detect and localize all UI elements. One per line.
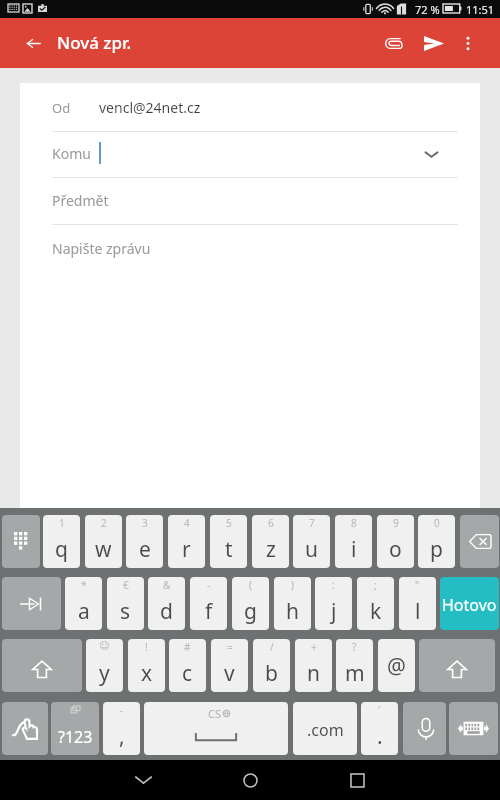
staticText: ) [291,578,294,592]
button[interactable]: @ [378,639,415,692]
button[interactable]: 0 [418,515,455,568]
staticText: j [331,597,337,626]
button[interactable]: Voice input [403,702,446,755]
button[interactable]: ' [361,702,398,755]
staticText: d [160,597,173,626]
staticText: " [415,578,420,592]
staticText: - [207,578,211,592]
button[interactable]: ?123 [51,702,99,755]
staticText: a [78,597,90,626]
staticText: Hotovo [442,594,497,616]
staticText: 6 [268,516,274,530]
button[interactable]: ? [336,639,373,692]
button[interactable]: ☺ [86,639,123,692]
staticText: # [184,640,191,654]
staticText: ? [352,640,357,654]
staticText: ; [374,578,377,592]
button[interactable]: 9 [377,515,414,568]
staticText: CS [208,706,221,721]
staticText: Napište zprávu [52,239,151,258]
button[interactable]: & [148,577,185,630]
button[interactable]: Symbols [2,515,40,568]
staticText: v [224,659,235,688]
button[interactable]: ! [128,639,165,692]
staticText: 3 [142,516,148,530]
button[interactable]: 7 [293,515,330,568]
staticText: b [265,659,278,688]
staticText: @ [387,652,406,681]
button[interactable]: 5 [210,515,247,568]
staticText: ( [249,578,252,592]
button[interactable]: Předmět [20,178,480,224]
button[interactable]: - [190,577,227,630]
button[interactable]: Back [10,18,57,68]
button[interactable]: = [211,639,248,692]
button[interactable]: Backspace [460,515,499,568]
staticText: 1 [59,516,65,530]
button[interactable]: : [315,577,352,630]
staticText: vencl@24net.cz [99,98,201,117]
staticText: 0 [434,516,440,530]
button[interactable]: Od [20,83,480,131]
button[interactable]: Komu [20,132,480,177]
button[interactable]: € [107,577,144,630]
button[interactable]: 2 [85,515,122,568]
staticText: o [389,535,402,564]
button[interactable]: + [295,639,332,692]
button[interactable]: .com [293,702,357,755]
button[interactable]: Send [412,18,456,68]
button[interactable]: ( [232,577,269,630]
button[interactable]: # [169,639,206,692]
staticText: e [139,535,151,564]
staticText: x [141,659,153,688]
staticText: Od [52,99,71,117]
staticText: c [182,659,193,688]
button[interactable]: Change keyboard [449,702,498,755]
button[interactable]: Attach file [371,18,415,68]
staticText: y [99,659,110,688]
staticText: l [415,597,421,626]
button[interactable]: 4 [168,515,205,568]
staticText: .com [307,719,344,741]
button[interactable]: " [399,577,436,630]
button[interactable]: / [253,639,290,692]
staticText: n [307,659,320,688]
staticText: & [163,578,171,592]
staticText: Komu [52,144,91,163]
staticText: k [370,597,382,626]
button[interactable]: ; [357,577,394,630]
button[interactable]: More options [448,18,488,68]
button[interactable]: Tab [2,577,61,630]
button[interactable]: Space [144,702,288,755]
staticText: ?123 [58,726,93,748]
button[interactable]: 6 [252,515,289,568]
staticText: t [225,535,233,564]
button[interactable]: Show more fields [419,142,443,166]
button[interactable]: - [103,702,140,755]
staticText: 72 % [415,2,440,17]
staticText: € [123,578,129,592]
button[interactable]: Hotovo [440,577,499,630]
staticText: s [120,597,131,626]
button[interactable]: 3 [126,515,163,568]
button[interactable]: ) [274,577,311,630]
staticText: 5 [226,516,232,530]
staticText: 4 [184,516,190,530]
staticText: p [430,535,443,564]
button[interactable]: Home [225,760,275,800]
button[interactable]: Back [118,760,168,800]
button[interactable]: * [65,577,102,630]
button[interactable]: Shift [419,639,495,692]
button[interactable]: 8 [335,515,372,568]
staticText: * [81,578,87,592]
button[interactable]: 1 [43,515,80,568]
button[interactable]: Napište zprávu [20,225,480,505]
button[interactable]: Recent apps [332,760,382,800]
button[interactable]: Handwriting [2,702,48,755]
button[interactable]: Shift [2,639,82,692]
staticText: z [266,535,276,564]
staticText: i [351,535,357,564]
staticText: g [244,597,257,626]
staticText: 8 [351,516,357,530]
staticText: r [182,535,191,564]
